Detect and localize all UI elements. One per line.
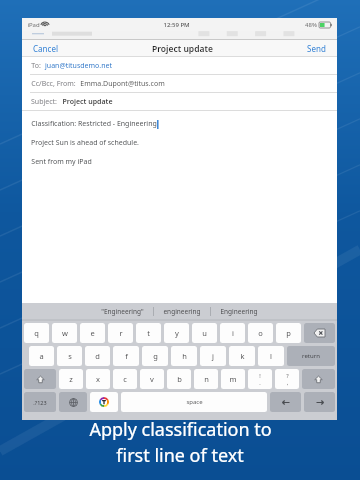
staticText: Engineering [220,307,258,316]
button[interactable]: a [29,346,54,366]
button[interactable]: engineering [154,305,210,318]
button[interactable]: u [192,323,217,343]
button[interactable]: r [108,323,133,343]
staticText: t [147,328,150,338]
button[interactable]: k [229,346,255,366]
staticText: q [34,328,39,338]
staticText: Sent from my iPad [31,157,92,167]
staticText: y [175,328,179,338]
button[interactable]: d [85,346,110,366]
staticText: k [240,351,245,361]
staticText: Project update [62,97,113,107]
button[interactable]: Send [304,41,329,56]
button[interactable]: b [167,369,191,389]
staticText: m [229,374,237,384]
button[interactable]: Engineering [211,305,267,318]
button[interactable]: s [57,346,82,366]
staticText: d [95,351,100,361]
button[interactable]: l [258,346,284,366]
button[interactable]: y [164,323,189,343]
button[interactable]: q [24,323,49,343]
button[interactable]: m [221,369,245,389]
staticText: s [68,351,72,361]
button[interactable]: Apply classification [90,392,118,412]
staticText: p [286,328,291,338]
button[interactable]: h [171,346,197,366]
button[interactable]: f [113,346,139,366]
staticText: To: [31,61,41,71]
staticText: Classification: Restricted - Engineering [31,119,157,129]
staticText: z [69,374,73,384]
button[interactable]: space [121,392,267,412]
button[interactable]: Shift [302,369,335,389]
staticText: c [123,374,127,384]
staticText: 12:59 PM [163,21,190,29]
button[interactable]: g [142,346,168,366]
staticText: b [177,374,182,384]
staticText: juan@titusdemo.net [45,61,112,71]
staticText: Project Sun is ahead of schedule. [31,138,139,148]
staticText: Cancel [33,43,58,54]
staticText: ? , [286,372,289,386]
button[interactable]: x [86,369,110,389]
staticText: Cc/Bcc, From: [31,79,76,89]
button[interactable]: w [52,323,77,343]
staticText: engineering [163,307,201,316]
button[interactable]: ! . [248,369,272,389]
staticText: .?123 [33,399,47,406]
button[interactable]: n [194,369,218,389]
staticText: space [186,398,203,406]
staticText: l [270,351,272,361]
staticText: w [62,328,68,338]
staticText: e [90,328,95,338]
staticText: u [202,328,207,338]
button[interactable]: c [113,369,137,389]
button[interactable]: Cancel [30,41,61,56]
button[interactable]: p [276,323,301,343]
staticText: a [39,351,44,361]
staticText: r [119,328,123,338]
button[interactable]: Shift [24,369,56,389]
button[interactable]: i [220,323,245,343]
button[interactable]: t [136,323,161,343]
staticText: h [182,351,187,361]
staticText: Subject: [31,97,57,107]
button[interactable]: j [200,346,226,366]
button[interactable]: Change keyboard language [59,392,87,412]
staticText: 48% [305,21,317,29]
staticText: ! . [259,372,261,386]
button[interactable]: v [140,369,164,389]
staticText: n [204,374,209,384]
staticText: i [232,328,234,338]
staticText: first line of text [116,443,244,468]
button[interactable]: "Engineering" [92,305,153,318]
button[interactable]: Cc/Bcc, From: [22,75,337,93]
staticText: Emma.Dupont@titus.com [80,79,165,89]
staticText: Send [307,43,326,54]
staticText: j [212,351,214,361]
button[interactable]: Classification: Restricted - Engineering [22,111,337,303]
button[interactable]: ? , [275,369,299,389]
staticText: Project update [152,43,213,55]
button[interactable]: .?123 [24,392,56,412]
button[interactable]: o [248,323,273,343]
button[interactable]: return [287,346,335,366]
staticText: Apply classification to [89,417,272,442]
staticText: iPad [27,21,40,29]
button[interactable]: Backspace [304,323,335,343]
staticText: return [302,352,320,360]
staticText: f [125,351,128,361]
button[interactable]: e [80,323,105,343]
staticText: "Engineering" [101,307,144,316]
button[interactable]: Move right [304,392,335,412]
staticText: o [258,328,263,338]
button[interactable]: Subject: [22,93,337,111]
staticText: g [153,351,158,361]
staticText: v [150,374,154,384]
staticText: x [96,374,100,384]
button[interactable]: To: [22,57,337,75]
button[interactable]: z [59,369,83,389]
button[interactable]: Move left [270,392,301,412]
